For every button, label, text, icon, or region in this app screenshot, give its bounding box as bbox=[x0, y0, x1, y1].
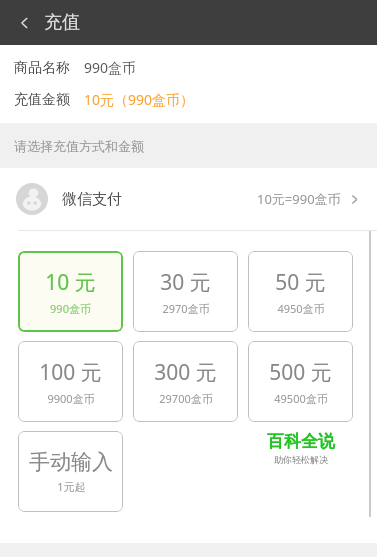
staticText: 商品名称 bbox=[14, 59, 70, 77]
button[interactable]: 微信支付 bbox=[0, 168, 377, 230]
button[interactable]: 500 元 bbox=[248, 341, 353, 422]
button[interactable]: 10 元 bbox=[18, 251, 123, 332]
staticText: 9900盒币 bbox=[47, 391, 95, 406]
button[interactable]: 100 元 bbox=[18, 341, 123, 422]
staticText: 手动输入 bbox=[29, 449, 113, 475]
staticText: 300 元 bbox=[154, 358, 217, 387]
button[interactable]: 50 元 bbox=[248, 251, 353, 332]
staticText: 10 元 bbox=[45, 268, 96, 297]
staticText: 2970盒币 bbox=[162, 301, 210, 316]
staticText: 29700盒币 bbox=[159, 391, 213, 406]
staticText: 充值金额 bbox=[14, 91, 70, 109]
staticText: 10元（990盒币） bbox=[84, 90, 195, 109]
staticText: 500 元 bbox=[269, 358, 332, 387]
staticText: 10元=990盒币 bbox=[257, 190, 341, 208]
staticText: 充值 bbox=[44, 11, 80, 34]
staticText: 100 元 bbox=[39, 358, 102, 387]
staticText: 990盒币 bbox=[50, 301, 91, 316]
staticText: 助你轻松解决 bbox=[274, 454, 328, 465]
staticText: 4950盒币 bbox=[277, 301, 325, 316]
staticText: 990盒币 bbox=[84, 58, 137, 77]
staticText: 50 元 bbox=[275, 268, 326, 297]
button[interactable]: 手动输入 bbox=[18, 431, 123, 512]
staticText: 30 元 bbox=[160, 268, 211, 297]
button[interactable]: 30 元 bbox=[133, 251, 238, 332]
button[interactable]: 300 元 bbox=[133, 341, 238, 422]
staticText: 49500盒币 bbox=[274, 391, 328, 406]
staticText: 请选择充值方式和金额 bbox=[14, 138, 144, 154]
staticText: 百科全说 bbox=[267, 431, 335, 452]
staticText: 1元起 bbox=[57, 479, 86, 494]
staticText: 微信支付 bbox=[62, 190, 122, 209]
button[interactable]: Back bbox=[12, 7, 84, 38]
